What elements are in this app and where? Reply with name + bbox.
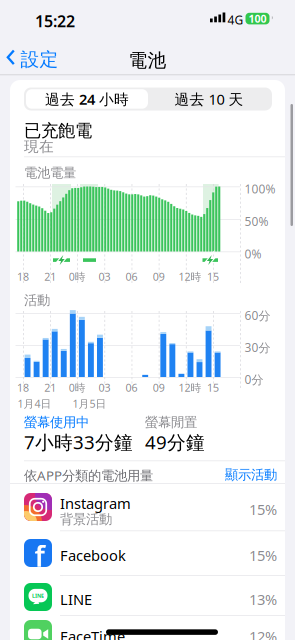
staticText: 1月4日 [17,396,51,411]
staticText: 13% [249,589,277,609]
staticText: 螢幕使用中 [24,414,89,430]
staticText: 15:22 [35,10,75,32]
staticText: Instagram [60,493,131,513]
button[interactable]: f [10,531,285,575]
staticText: 1月5日 [72,396,106,411]
button[interactable]: LINE [10,575,285,619]
staticText: 15 [207,380,219,395]
staticText: 100% [244,181,275,197]
staticText: 15% [249,499,277,519]
staticText: 06 [126,380,138,395]
staticText: 09 [153,269,165,284]
staticText: 12% [249,626,277,640]
staticText: 0% [244,246,261,262]
staticText: LINE [32,592,44,599]
button[interactable]: 過去 24 小時 [26,89,148,109]
staticText: 15 [207,269,219,284]
staticText: 設定 [20,48,58,71]
staticText: 過去 10 天 [174,89,243,109]
staticText: 21 [44,269,56,284]
staticText: 依APP分類的電池用量 [24,466,153,484]
button[interactable]: FaceTime [10,612,285,640]
button[interactable]: 過去 10 天 [148,89,270,109]
staticText: 15% [249,545,277,565]
staticText: 螢幕閒置 [145,414,197,430]
staticText: 60分 [244,307,270,323]
staticText: 12時 [178,380,201,395]
staticText: 09 [153,380,165,395]
staticText: 30分 [244,339,270,355]
staticText: 已充飽電 [24,120,92,141]
staticText: Facebook [60,545,126,565]
staticText: 背景活動 [60,511,112,527]
button[interactable]: Instagram [10,485,285,529]
staticText: 49分鐘 [145,429,205,454]
staticText: 18 [17,380,29,395]
staticText: 50% [244,213,268,229]
staticText: 0時 [69,380,86,395]
staticText: f [34,537,44,575]
staticText: 06 [126,269,138,284]
staticText: 活動 [24,292,50,308]
staticText: FaceTime [60,626,125,640]
staticText: 電池電量 [24,164,76,181]
staticText: 100 [248,11,266,26]
staticText: 12時 [178,269,201,284]
staticText: 0123456789 [0,0,80,19]
staticText: 電池 [128,49,166,72]
staticText: 顯示活動 [225,466,277,483]
staticText: 0分 [244,371,263,387]
staticText: 18 [17,269,29,284]
staticText: 7小時33分鐘 [24,429,133,454]
button[interactable]: 顯示活動 [177,466,277,483]
staticText: 21 [44,380,56,395]
button[interactable]: 設定 [0,45,58,69]
staticText: 過去 24 小時 [45,89,129,109]
staticText: LINE [60,589,92,609]
staticText: 0時 [69,269,86,284]
staticText: 03 [98,380,110,395]
staticText: 03 [98,269,110,284]
staticText: 現在 [24,137,54,155]
staticText: 4G [227,12,243,28]
